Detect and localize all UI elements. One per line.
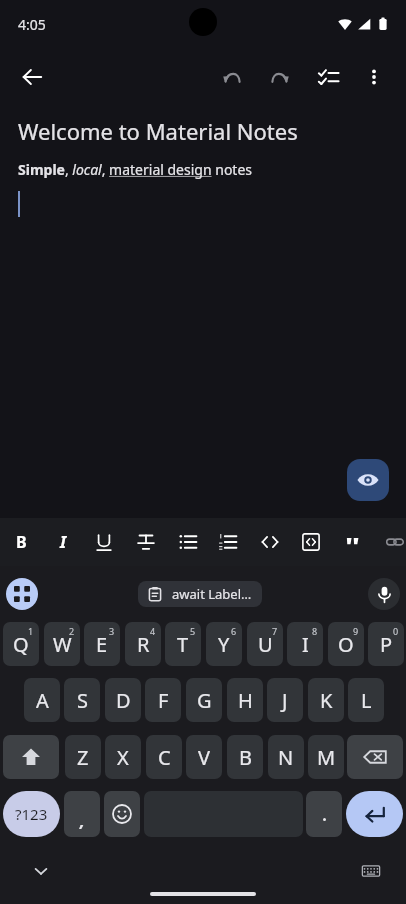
staticText: R [137, 631, 150, 658]
staticText: G [197, 687, 212, 714]
button[interactable]: O [328, 622, 364, 666]
staticText: 3 [109, 625, 115, 637]
button[interactable]: F [145, 678, 181, 722]
button[interactable]: Change keyboard [356, 856, 386, 886]
staticText: ?123 [15, 804, 48, 824]
button[interactable]: V [186, 735, 222, 779]
staticText: N [278, 744, 294, 771]
button[interactable]: Bulleted list [168, 522, 208, 562]
button[interactable]: Hide keyboard [26, 856, 56, 886]
staticText: B [16, 531, 27, 553]
staticText: Simple, local, material design notes [18, 160, 253, 179]
button[interactable]: Code [250, 522, 290, 562]
staticText: P [380, 631, 393, 658]
staticText: I [302, 631, 309, 658]
staticText: S [77, 687, 88, 714]
button[interactable]: Preview [347, 459, 389, 501]
staticText: 0 [393, 625, 399, 637]
button[interactable]: Strikethrough [126, 522, 166, 562]
staticText: K [320, 687, 333, 714]
button[interactable]: S [64, 678, 100, 722]
button[interactable]: W [44, 622, 80, 666]
button[interactable]: Italic [43, 522, 83, 562]
staticText: D [116, 687, 131, 714]
button[interactable]: A [24, 678, 60, 722]
button[interactable]: Enter [346, 791, 403, 837]
button[interactable]: Backspace [347, 735, 403, 779]
staticText: J [282, 687, 288, 714]
button[interactable]: B [227, 735, 263, 779]
staticText: L [361, 687, 372, 714]
staticText: Y [218, 631, 230, 658]
button[interactable]: Z [65, 735, 101, 779]
staticText: 4 [150, 625, 156, 637]
button[interactable]: ?123 [3, 791, 60, 837]
button[interactable]: K [308, 678, 344, 722]
staticText: , [80, 810, 85, 832]
button[interactable]: M [308, 735, 344, 779]
staticText: Welcome to Material Notes [18, 116, 298, 146]
staticText: X [117, 744, 129, 771]
button[interactable]: Undo [210, 55, 254, 99]
button[interactable]: T [165, 622, 201, 666]
button[interactable]: R [125, 622, 161, 666]
staticText: A [36, 687, 49, 714]
button[interactable]: Underline [84, 522, 124, 562]
staticText: 8 [312, 625, 318, 637]
button[interactable]: Redo [258, 55, 302, 99]
staticText: U [258, 631, 273, 658]
staticText: 4:05 [18, 15, 46, 34]
staticText: I [60, 531, 67, 553]
staticText: 5 [190, 625, 196, 637]
button[interactable]: C [146, 735, 182, 779]
staticText: W [53, 631, 72, 658]
button[interactable]: , [64, 791, 100, 837]
staticText: M [317, 744, 336, 771]
button[interactable]: H [227, 678, 263, 722]
button[interactable]: Code block [291, 522, 331, 562]
button[interactable]: Q [3, 622, 39, 666]
staticText: 9 [353, 625, 359, 637]
staticText: V [198, 744, 210, 771]
staticText: F [158, 687, 169, 714]
button[interactable]: Checklist [306, 55, 350, 99]
button[interactable]: Bold [1, 522, 41, 562]
button[interactable]: Numbered list [208, 522, 248, 562]
button[interactable]: Voice input [368, 578, 400, 610]
button[interactable]: await Label… [148, 581, 252, 607]
staticText: Q [13, 631, 29, 658]
button[interactable]: E [84, 622, 120, 666]
staticText: C [158, 744, 171, 771]
staticText: T [177, 631, 189, 658]
staticText: Z [77, 744, 89, 771]
button[interactable]: J [267, 678, 303, 722]
button[interactable]: P [368, 622, 404, 666]
button[interactable]: Shift [3, 735, 59, 779]
button[interactable]: G [186, 678, 222, 722]
button[interactable]: U [247, 622, 283, 666]
staticText: E [96, 631, 108, 658]
staticText: 1 [28, 625, 34, 637]
staticText: 6 [231, 625, 237, 637]
button[interactable]: Back [10, 55, 54, 99]
button[interactable]: Emoji [104, 791, 140, 837]
button[interactable]: Toolbar [6, 578, 38, 610]
button[interactable]: D [105, 678, 141, 722]
button[interactable]: N [268, 735, 304, 779]
button[interactable]: More options [352, 55, 396, 99]
staticText: H [238, 687, 253, 714]
button[interactable] [306, 791, 342, 837]
button[interactable]: L [348, 678, 384, 722]
button[interactable]: Link [375, 522, 406, 562]
staticText: 2 [69, 625, 75, 637]
button[interactable]: I [287, 622, 323, 666]
staticText: B [239, 744, 252, 771]
staticText: await Label… [172, 585, 252, 603]
staticText: 7 [272, 625, 278, 637]
button[interactable]: Y [206, 622, 242, 666]
button[interactable]: X [105, 735, 141, 779]
button[interactable]: Quote [333, 522, 373, 562]
staticText: O [338, 631, 354, 658]
